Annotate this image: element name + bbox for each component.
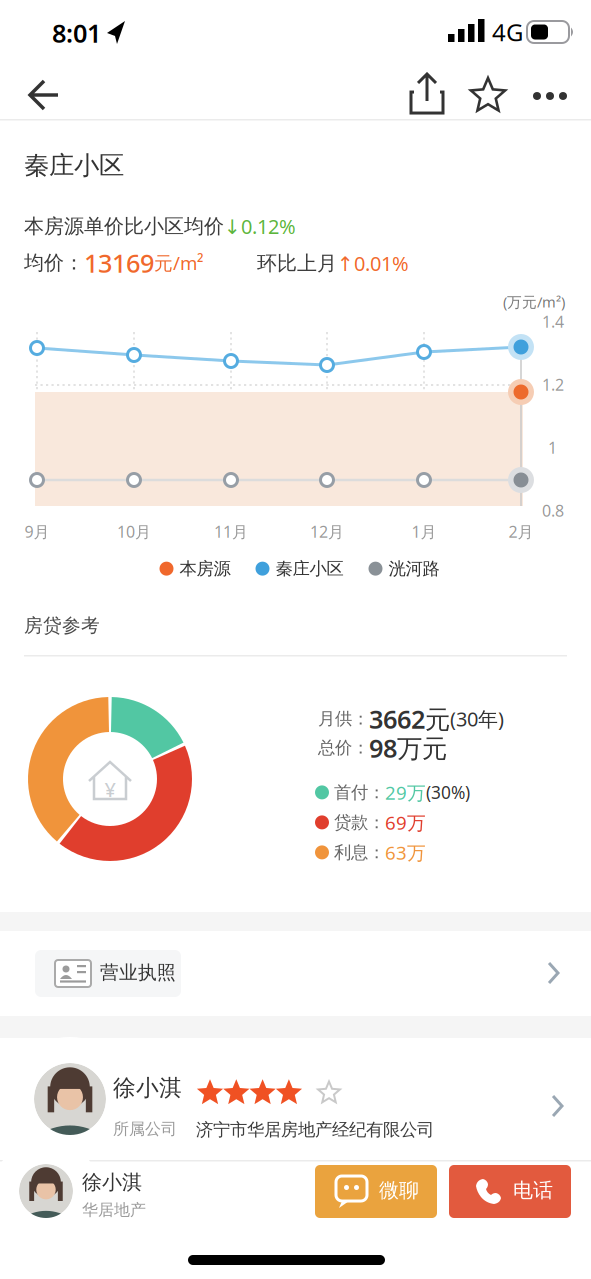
staticText: 29万	[385, 780, 426, 805]
staticText: 济宁市华居房地产经纪有限公司	[196, 1119, 434, 1140]
staticText: 元/m²	[154, 250, 204, 275]
staticText: 13169	[84, 246, 154, 280]
staticText: 秦庄小区	[275, 558, 343, 579]
button[interactable]: 电话	[449, 1165, 571, 1218]
staticText: 2月	[508, 521, 533, 542]
staticText: 4G	[492, 16, 523, 48]
staticText: 98万元	[369, 731, 447, 765]
staticText: 本房源单价比小区均价	[24, 214, 224, 239]
staticText: ↓0.12%	[224, 213, 296, 240]
staticText: 微聊	[379, 1178, 419, 1203]
button[interactable]: 徐小淇	[0, 0, 591, 1279]
staticText: 3662元	[369, 702, 450, 736]
staticText: 所属公司	[113, 1119, 177, 1139]
staticText: (万元/m²)	[503, 292, 565, 311]
staticText: 房贷参考	[24, 614, 100, 637]
button[interactable]: 徐小淇	[0, 0, 591, 1279]
button[interactable]: Share	[0, 0, 591, 1279]
button[interactable]: 微聊	[315, 1165, 437, 1218]
staticText: 69万	[385, 810, 426, 835]
button[interactable]: 营业执照	[0, 0, 591, 1279]
staticText: (30年)	[450, 705, 504, 732]
staticText: 月供：	[318, 708, 369, 729]
staticText: 1月	[411, 521, 436, 542]
staticText: 营业执照	[100, 961, 176, 984]
staticText: ¥	[104, 776, 115, 803]
staticText: 63万	[385, 840, 426, 865]
staticText: 1.2	[542, 374, 564, 395]
button[interactable]: Favorite	[0, 0, 591, 1279]
button[interactable]: More	[0, 0, 591, 1279]
staticText: (30%)	[426, 781, 470, 804]
staticText: 1	[548, 437, 557, 458]
staticText: 1.4	[542, 311, 564, 332]
staticText: 首付：	[329, 782, 385, 803]
staticText: 10月	[117, 521, 151, 542]
staticText: 秦庄小区	[24, 150, 124, 181]
staticText: 徐小淇	[82, 1170, 142, 1195]
staticText: 0.8	[542, 500, 564, 521]
staticText: 贷款：	[329, 812, 385, 833]
staticText: 9月	[24, 521, 49, 542]
staticText: 环比上月	[257, 251, 337, 276]
staticText: 本房源	[179, 558, 230, 579]
staticText: 12月	[310, 521, 344, 542]
staticText: 11月	[214, 521, 248, 542]
staticText: ↑0.01%	[337, 250, 409, 277]
staticText: 均价：	[24, 250, 84, 275]
staticText: 徐小淇	[113, 1074, 182, 1102]
staticText: 电话	[513, 1178, 553, 1203]
staticText: 洸河路	[388, 558, 439, 579]
staticText: 利息：	[329, 842, 385, 863]
staticText: 华居地产	[82, 1200, 146, 1220]
staticText: 总价：	[318, 737, 369, 758]
staticText: 8:01	[52, 16, 101, 50]
